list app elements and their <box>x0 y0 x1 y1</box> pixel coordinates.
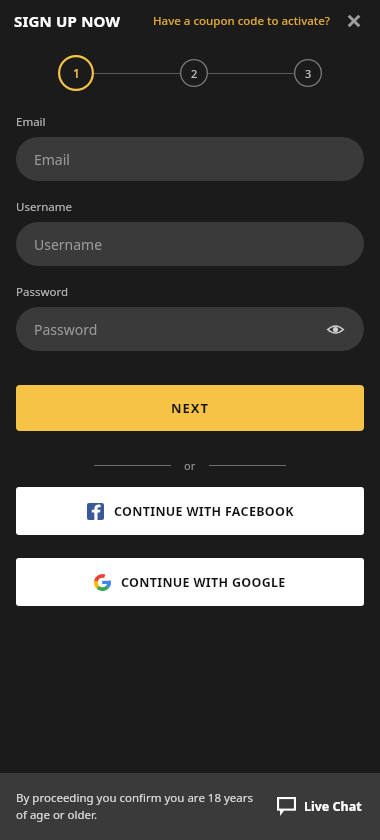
staticText: Email <box>16 114 46 130</box>
staticText: SIGN UP NOW <box>14 11 121 31</box>
staticText: CONTINUE WITH FACEBOOK <box>114 503 294 520</box>
staticText: Password <box>16 284 69 300</box>
staticText: or <box>184 458 196 473</box>
button[interactable]: Live Chat <box>273 793 366 820</box>
button[interactable]: Show password <box>324 318 346 340</box>
staticText: 1 <box>73 65 80 81</box>
button[interactable]: NEXT <box>16 385 364 431</box>
button[interactable]: Have a coupon code to activate? <box>151 9 332 33</box>
staticText: 2 <box>191 66 198 81</box>
staticText: NEXT <box>171 399 210 417</box>
staticText: By proceeding you confirm you are 18 yea… <box>16 790 266 823</box>
button[interactable]: Username <box>16 222 364 266</box>
button[interactable]: CONTINUE WITH GOOGLE <box>16 558 364 606</box>
staticText: Username <box>16 199 72 215</box>
staticText: Live Chat <box>304 798 362 815</box>
staticText: CONTINUE WITH GOOGLE <box>121 574 286 591</box>
staticText: Password <box>34 320 98 339</box>
button[interactable]: 3 <box>294 59 322 87</box>
button[interactable]: CONTINUE WITH FACEBOOK <box>16 487 364 535</box>
staticText: Email <box>34 150 70 169</box>
button[interactable]: Password <box>16 307 364 351</box>
button[interactable]: 1 <box>58 55 94 91</box>
staticText: Have a coupon code to activate? <box>153 13 330 29</box>
button[interactable]: Email <box>16 137 364 181</box>
staticText: 3 <box>305 66 312 81</box>
button[interactable]: 2 <box>180 59 208 87</box>
staticText: Username <box>34 235 103 254</box>
button[interactable]: Close <box>342 9 366 33</box>
